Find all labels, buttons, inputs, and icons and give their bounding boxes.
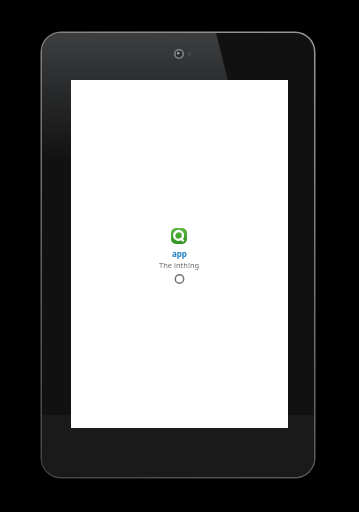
staticText: The inth!ng bbox=[159, 260, 200, 270]
staticText: app bbox=[172, 248, 187, 259]
